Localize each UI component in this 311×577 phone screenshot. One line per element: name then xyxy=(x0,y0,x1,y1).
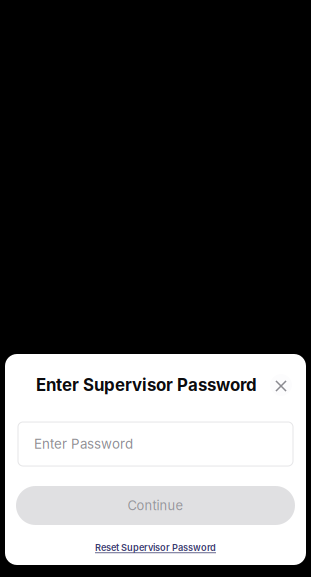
staticText: Reset Supervisor Password xyxy=(95,542,216,553)
button[interactable]: Reset Supervisor Password xyxy=(95,542,216,553)
staticText: Enter Supervisor Password xyxy=(36,375,257,395)
button[interactable]: Close xyxy=(270,374,292,396)
staticText: Continue xyxy=(127,498,183,513)
button[interactable]: Enter Password xyxy=(18,422,293,466)
button[interactable]: Continue xyxy=(16,486,295,525)
staticText: Enter Password xyxy=(34,436,133,452)
